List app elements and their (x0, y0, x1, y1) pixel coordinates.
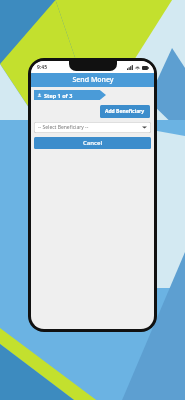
staticText: 9:45 (37, 64, 47, 71)
staticText: Cancel (83, 139, 103, 147)
button[interactable]: Step 1 of 3 (34, 90, 106, 100)
button[interactable]: -- Select Beneficiary -- (34, 122, 151, 133)
staticText: -- Select Beneficiary -- (38, 124, 89, 131)
staticText: Add Beneficiary (105, 108, 145, 115)
button[interactable]: Cancel (34, 137, 151, 149)
button[interactable]: Add Beneficiary (100, 105, 150, 118)
button[interactable]: Send Money (31, 73, 154, 87)
staticText: Step 1 of 3 (44, 92, 73, 99)
staticText: Send Money (72, 75, 114, 85)
